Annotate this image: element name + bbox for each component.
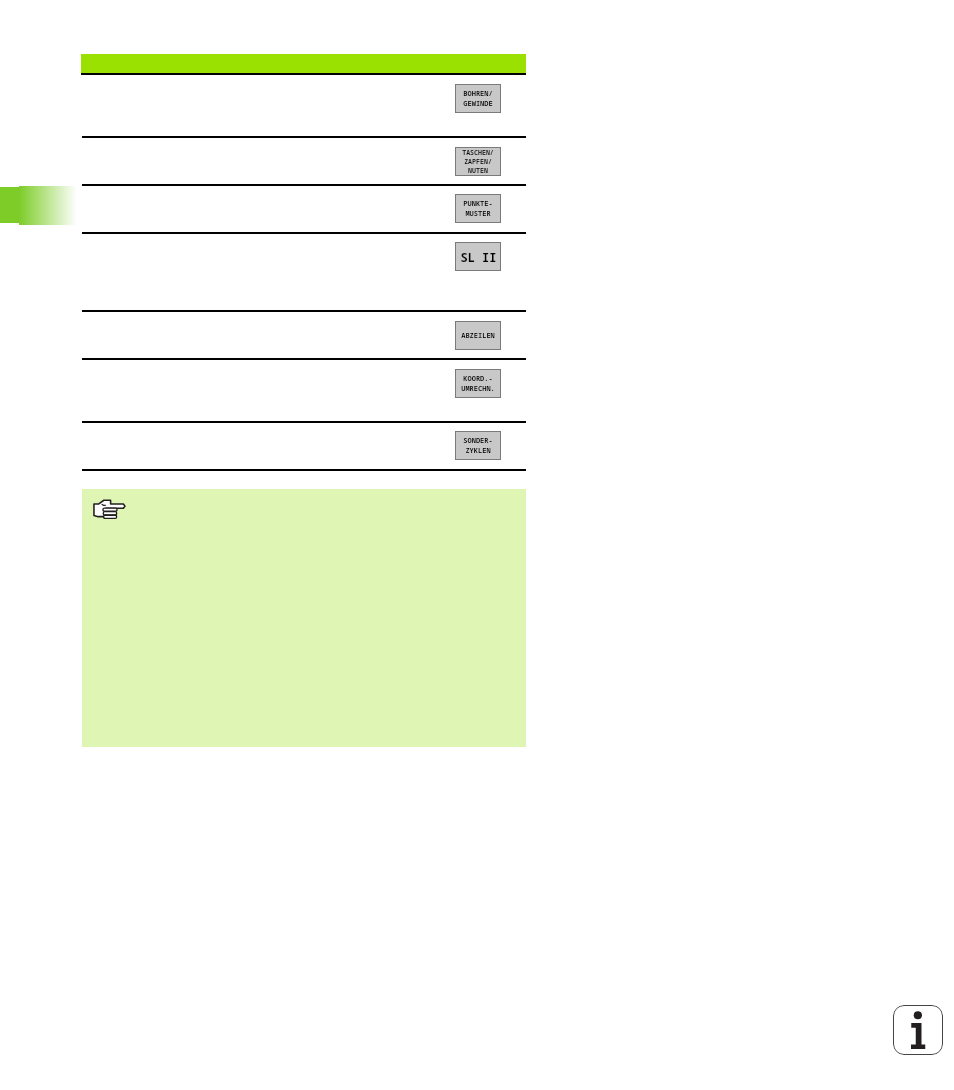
staticText: BOHREN/ — [463, 89, 493, 99]
staticText: SONDER- — [463, 436, 493, 446]
staticText: UMRECHN. — [461, 384, 495, 394]
staticText: KOORD.- — [463, 374, 493, 384]
staticText: SL II — [460, 249, 497, 265]
staticText: TASCHEN/ — [462, 148, 494, 157]
button[interactable]: BOHREN/ — [455, 84, 501, 113]
button[interactable]: KOORD.- — [455, 369, 501, 398]
staticText: PUNKTE- — [463, 199, 493, 209]
staticText: ZYKLEN — [465, 446, 491, 456]
button[interactable]: PUNKTE- — [455, 194, 501, 223]
staticText: GEWINDE — [463, 99, 493, 109]
button[interactable]: Information — [893, 1005, 943, 1055]
staticText: NUTEN — [468, 166, 488, 175]
button[interactable]: TASCHEN/ — [455, 147, 501, 176]
staticText: ZAPFEN/ — [464, 157, 492, 166]
button[interactable]: SONDER- — [455, 431, 501, 460]
other: Note — [93, 499, 125, 520]
staticText: MUSTER — [465, 209, 491, 219]
button[interactable]: ABZEILEN — [455, 321, 501, 350]
button[interactable]: SL II — [455, 242, 501, 271]
staticText: ABZEILEN — [461, 331, 495, 341]
